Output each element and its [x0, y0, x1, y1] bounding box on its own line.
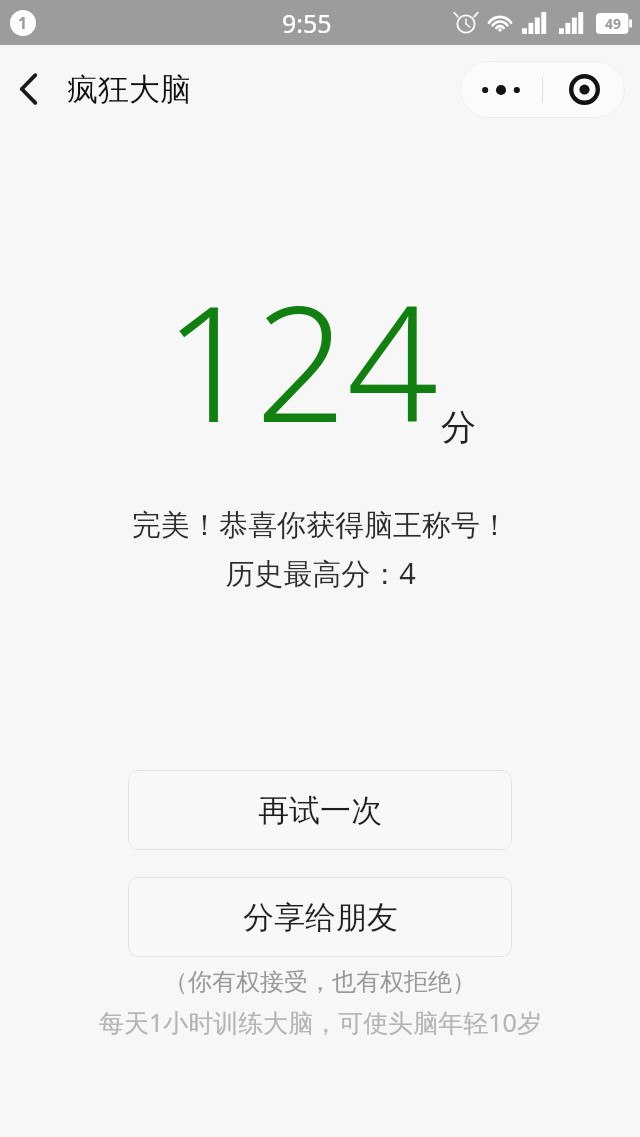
- staticText: 完美！恭喜你获得脑王称号！: [132, 507, 509, 544]
- staticText: 124: [164, 251, 439, 469]
- staticText: （你有权接受，也有权拒绝）: [164, 967, 476, 997]
- staticText: 历史最高分：4: [225, 553, 416, 593]
- staticText: 1: [18, 12, 28, 34]
- staticText: 分享给朋友: [243, 898, 398, 937]
- button[interactable]: 分享给朋友: [128, 877, 512, 957]
- staticText: 49: [605, 14, 622, 33]
- button[interactable]: Close: [543, 61, 625, 118]
- staticText: 疯狂大脑: [67, 70, 191, 109]
- button[interactable]: More: [460, 61, 542, 118]
- staticText: 再试一次: [258, 791, 382, 830]
- button[interactable]: Back: [0, 60, 58, 118]
- staticText: 每天1小时训练大脑，可使头脑年轻10岁: [99, 1005, 542, 1039]
- button[interactable]: 再试一次: [128, 770, 512, 850]
- staticText: 分: [441, 405, 476, 449]
- staticText: 9:55: [282, 6, 332, 40]
